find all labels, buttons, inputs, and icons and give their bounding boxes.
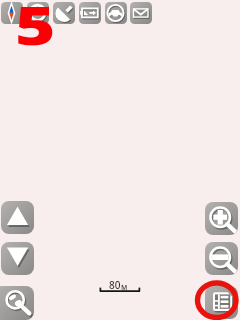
button[interactable]: Menu bbox=[205, 286, 238, 319]
button[interactable]: Search bbox=[0, 286, 34, 320]
button[interactable]: Scroll up bbox=[1, 201, 34, 234]
staticText: м bbox=[121, 281, 128, 292]
button[interactable]: Zoom out bbox=[205, 242, 238, 275]
staticText: 5 bbox=[15, 0, 56, 60]
button[interactable]: Battery bbox=[79, 2, 101, 24]
button[interactable]: Scroll down bbox=[1, 242, 34, 275]
button[interactable]: Vehicle bbox=[105, 2, 127, 24]
button[interactable]: Compass bbox=[1, 2, 23, 24]
button[interactable]: GPS signal bbox=[53, 2, 75, 24]
button[interactable]: Messages bbox=[130, 2, 152, 24]
staticText: 80 bbox=[109, 278, 121, 292]
button[interactable]: Rotate map bbox=[27, 2, 49, 24]
button[interactable]: Zoom in bbox=[205, 202, 238, 235]
